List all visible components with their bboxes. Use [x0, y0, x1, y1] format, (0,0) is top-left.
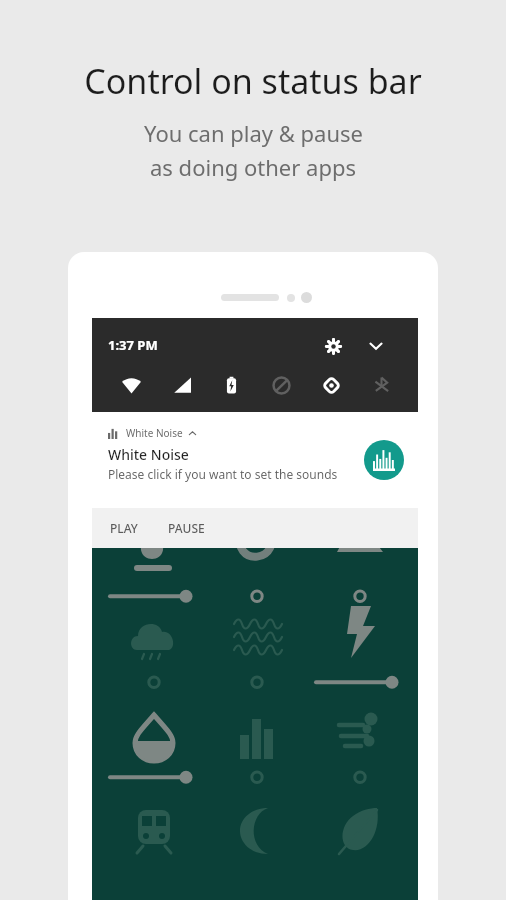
- button[interactable]: Wi-Fi: [114, 368, 148, 402]
- button[interactable]: PAUSE: [162, 513, 211, 543]
- button[interactable]: Water: [106, 711, 202, 803]
- staticText: 1:37 PM: [108, 336, 158, 354]
- button[interactable]: PLAY: [104, 513, 144, 543]
- button[interactable]: Rain: [106, 616, 202, 708]
- staticText: Control on status bar: [84, 58, 422, 104]
- button[interactable]: Expand: [362, 332, 390, 360]
- button[interactable]: Mountain: [312, 530, 408, 622]
- button[interactable]: Coffee: [106, 530, 202, 622]
- staticText: White Noise: [126, 426, 183, 440]
- staticText: You can play & pause: [144, 118, 363, 148]
- button[interactable]: Thunder: [312, 616, 408, 708]
- button[interactable]: Battery: [214, 368, 248, 402]
- staticText: PAUSE: [168, 520, 205, 536]
- staticText: Please click if you want to set the soun…: [108, 466, 338, 482]
- button[interactable]: Bluetooth: [364, 368, 398, 402]
- button[interactable]: Do not disturb: [264, 368, 298, 402]
- button[interactable]: Auto rotate: [314, 368, 348, 402]
- staticText: as doing other apps: [150, 152, 356, 182]
- staticText: PLAY: [110, 520, 138, 536]
- button[interactable]: Leaf: [312, 804, 408, 896]
- button[interactable]: Settings: [319, 332, 347, 360]
- button[interactable]: Train: [106, 804, 202, 896]
- button[interactable]: Loop: [209, 530, 305, 622]
- button[interactable]: Wind: [312, 711, 408, 803]
- button[interactable]: Night: [209, 804, 305, 896]
- button[interactable]: White Noise: [92, 412, 418, 508]
- staticText: White Noise: [108, 445, 189, 464]
- button[interactable]: Volume: [209, 711, 305, 803]
- button[interactable]: Waves: [209, 616, 305, 708]
- button[interactable]: Mobile data: [164, 368, 198, 402]
